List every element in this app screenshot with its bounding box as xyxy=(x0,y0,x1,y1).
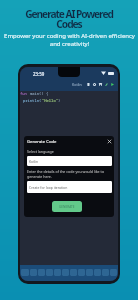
button[interactable]: Build xyxy=(103,81,109,87)
staticText: GENERATE xyxy=(59,205,75,209)
staticText: Enter the details of the code you would … xyxy=(27,169,105,179)
button[interactable] xyxy=(38,269,45,276)
staticText: Kotlin xyxy=(72,82,82,87)
staticText: "Hello" xyxy=(42,98,58,103)
staticText: Generate AI Powered Codes xyxy=(25,7,113,31)
staticText: fun xyxy=(20,91,30,96)
button[interactable]: Run xyxy=(109,81,115,87)
staticText: println( xyxy=(23,98,42,103)
button[interactable] xyxy=(46,269,53,276)
staticText: Kotlin xyxy=(29,159,39,164)
button[interactable] xyxy=(54,269,61,276)
staticText: main() { xyxy=(30,91,49,96)
button[interactable] xyxy=(86,269,93,276)
button[interactable] xyxy=(94,269,101,276)
button[interactable]: New file xyxy=(85,81,91,87)
staticText: Select language xyxy=(27,149,54,154)
button[interactable]: Settings xyxy=(91,81,97,87)
button[interactable]: Kotlin xyxy=(27,156,112,166)
button[interactable]: Create for loop iteration xyxy=(27,181,112,193)
button[interactable] xyxy=(30,269,37,276)
staticText: ) xyxy=(58,98,61,103)
button[interactable] xyxy=(70,269,77,276)
staticText: Empower your coding with AI-driven effic… xyxy=(4,32,135,48)
button[interactable]: GENERATE xyxy=(52,201,82,212)
button[interactable] xyxy=(78,269,85,276)
button[interactable] xyxy=(110,269,117,276)
staticText: Generate Code xyxy=(27,139,57,145)
button[interactable]: Save xyxy=(97,81,103,87)
button[interactable] xyxy=(21,269,29,276)
staticText: Create for loop iteration xyxy=(29,185,68,190)
staticText: 23:59 xyxy=(33,71,45,77)
button[interactable] xyxy=(62,269,69,276)
button[interactable] xyxy=(102,269,109,276)
button[interactable]: Close xyxy=(106,138,113,145)
